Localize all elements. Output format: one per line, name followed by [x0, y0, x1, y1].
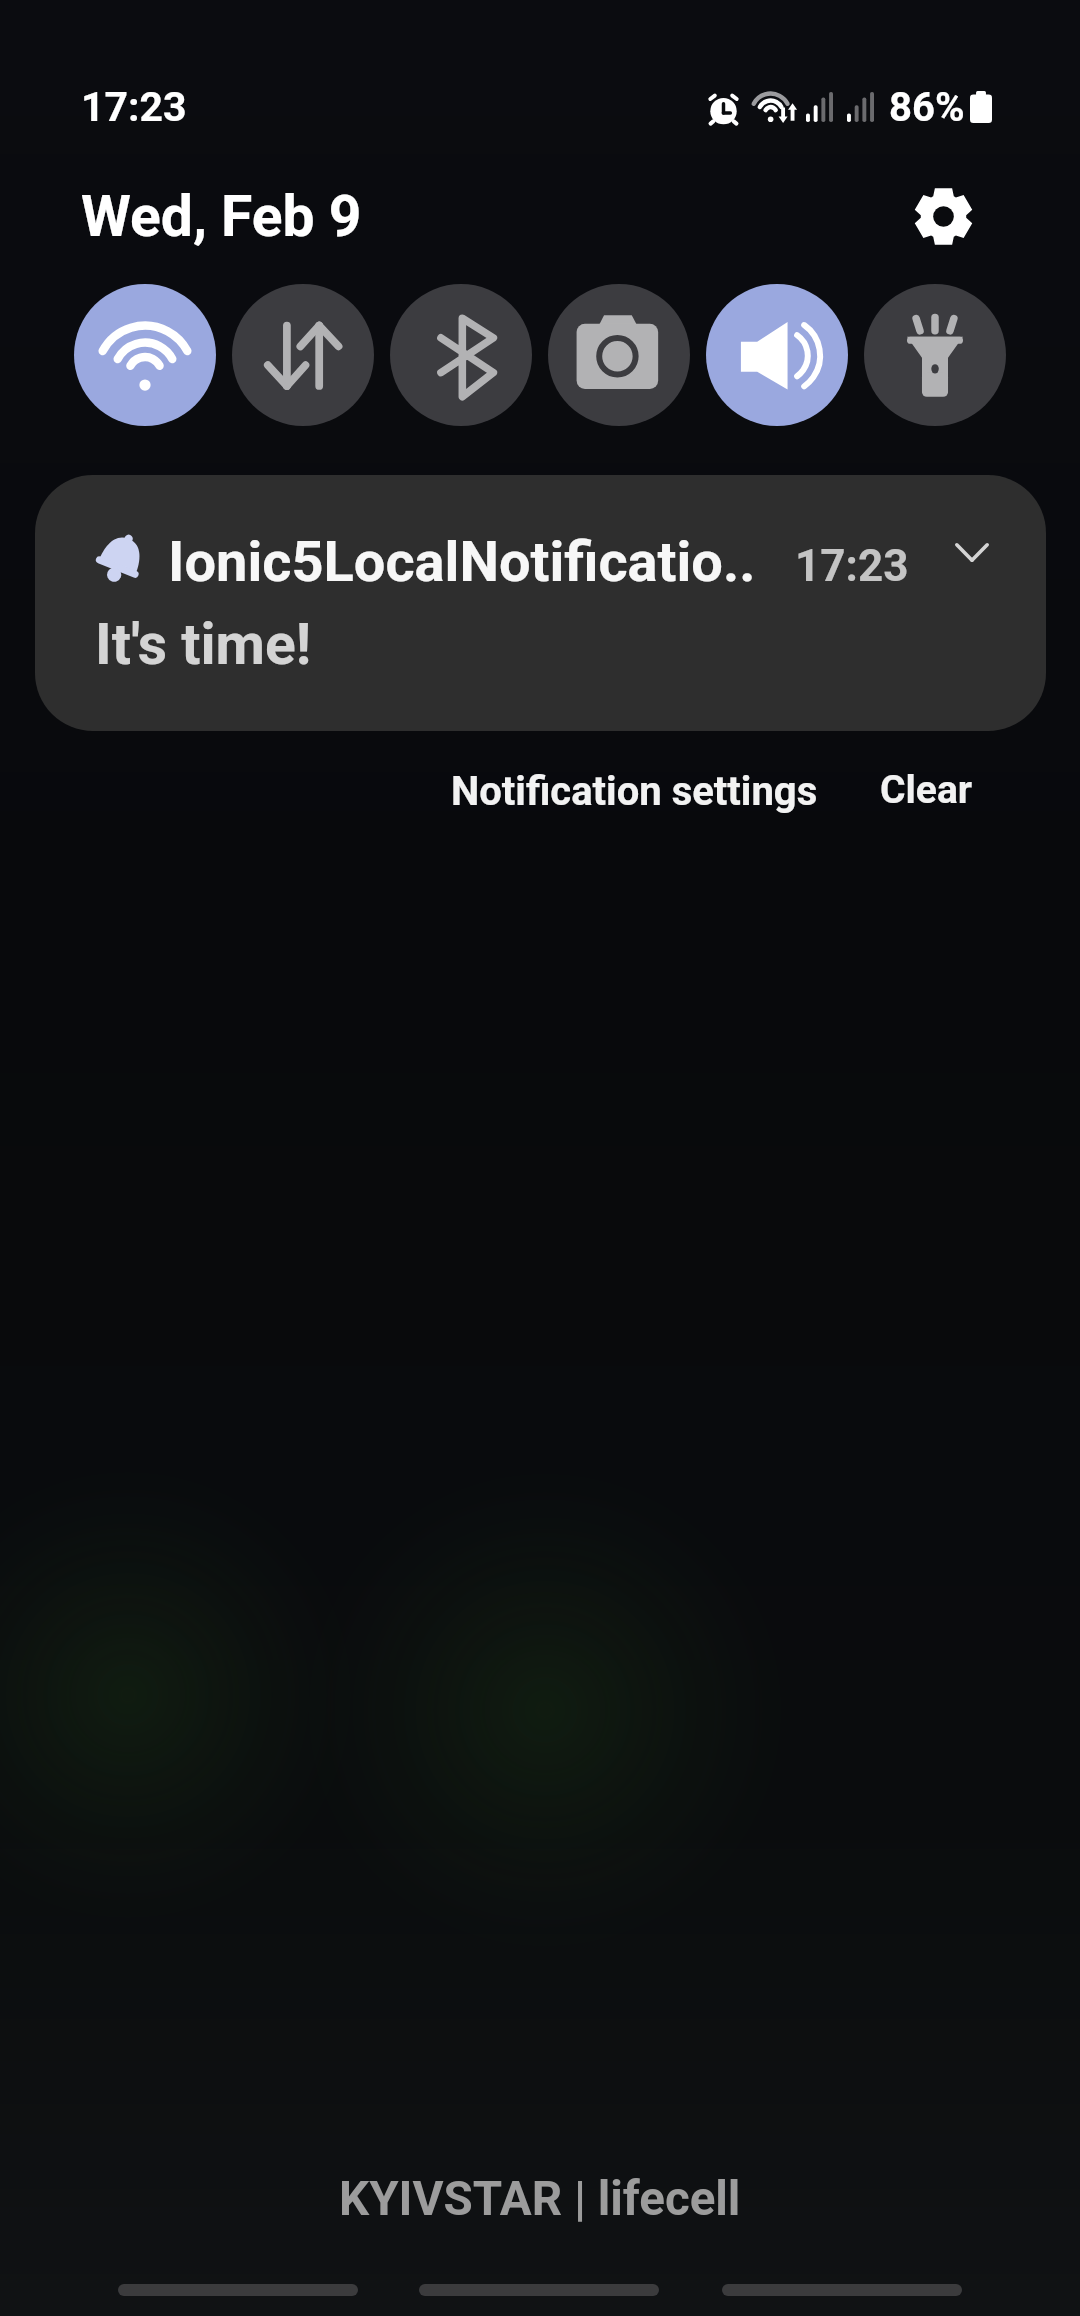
staticText: 17:23	[795, 540, 909, 592]
staticText: Clear	[880, 767, 973, 813]
staticText: 86%	[889, 84, 965, 131]
button[interactable]: Sound	[706, 284, 848, 426]
button[interactable]: Home	[419, 2284, 659, 2296]
button[interactable]: Expand notification	[938, 518, 1006, 586]
button[interactable]: Mobile data	[232, 284, 374, 426]
staticText: Ionic5LocalNotificatio..	[168, 529, 756, 595]
button[interactable]: Recents	[118, 2284, 358, 2296]
staticText: KYIVSTAR | lifecell	[339, 2171, 741, 2227]
button[interactable]: Back	[722, 2284, 962, 2296]
staticText: Notification settings	[451, 768, 818, 815]
staticText: It's time!	[95, 611, 312, 678]
button[interactable]: Bluetooth	[390, 284, 532, 426]
staticText: 17:23	[81, 83, 187, 131]
button[interactable]: Notification settings	[437, 754, 832, 829]
button[interactable]: Settings	[899, 172, 987, 260]
button[interactable]: Clear	[866, 753, 987, 827]
button[interactable]: Camera	[548, 284, 690, 426]
button[interactable]: Flashlight	[864, 284, 1006, 426]
button[interactable]: Ionic5LocalNotification, It's time!, 17:…	[35, 475, 1046, 731]
staticText: Wed, Feb 9	[81, 183, 362, 250]
button[interactable]: Wi-Fi	[74, 284, 216, 426]
